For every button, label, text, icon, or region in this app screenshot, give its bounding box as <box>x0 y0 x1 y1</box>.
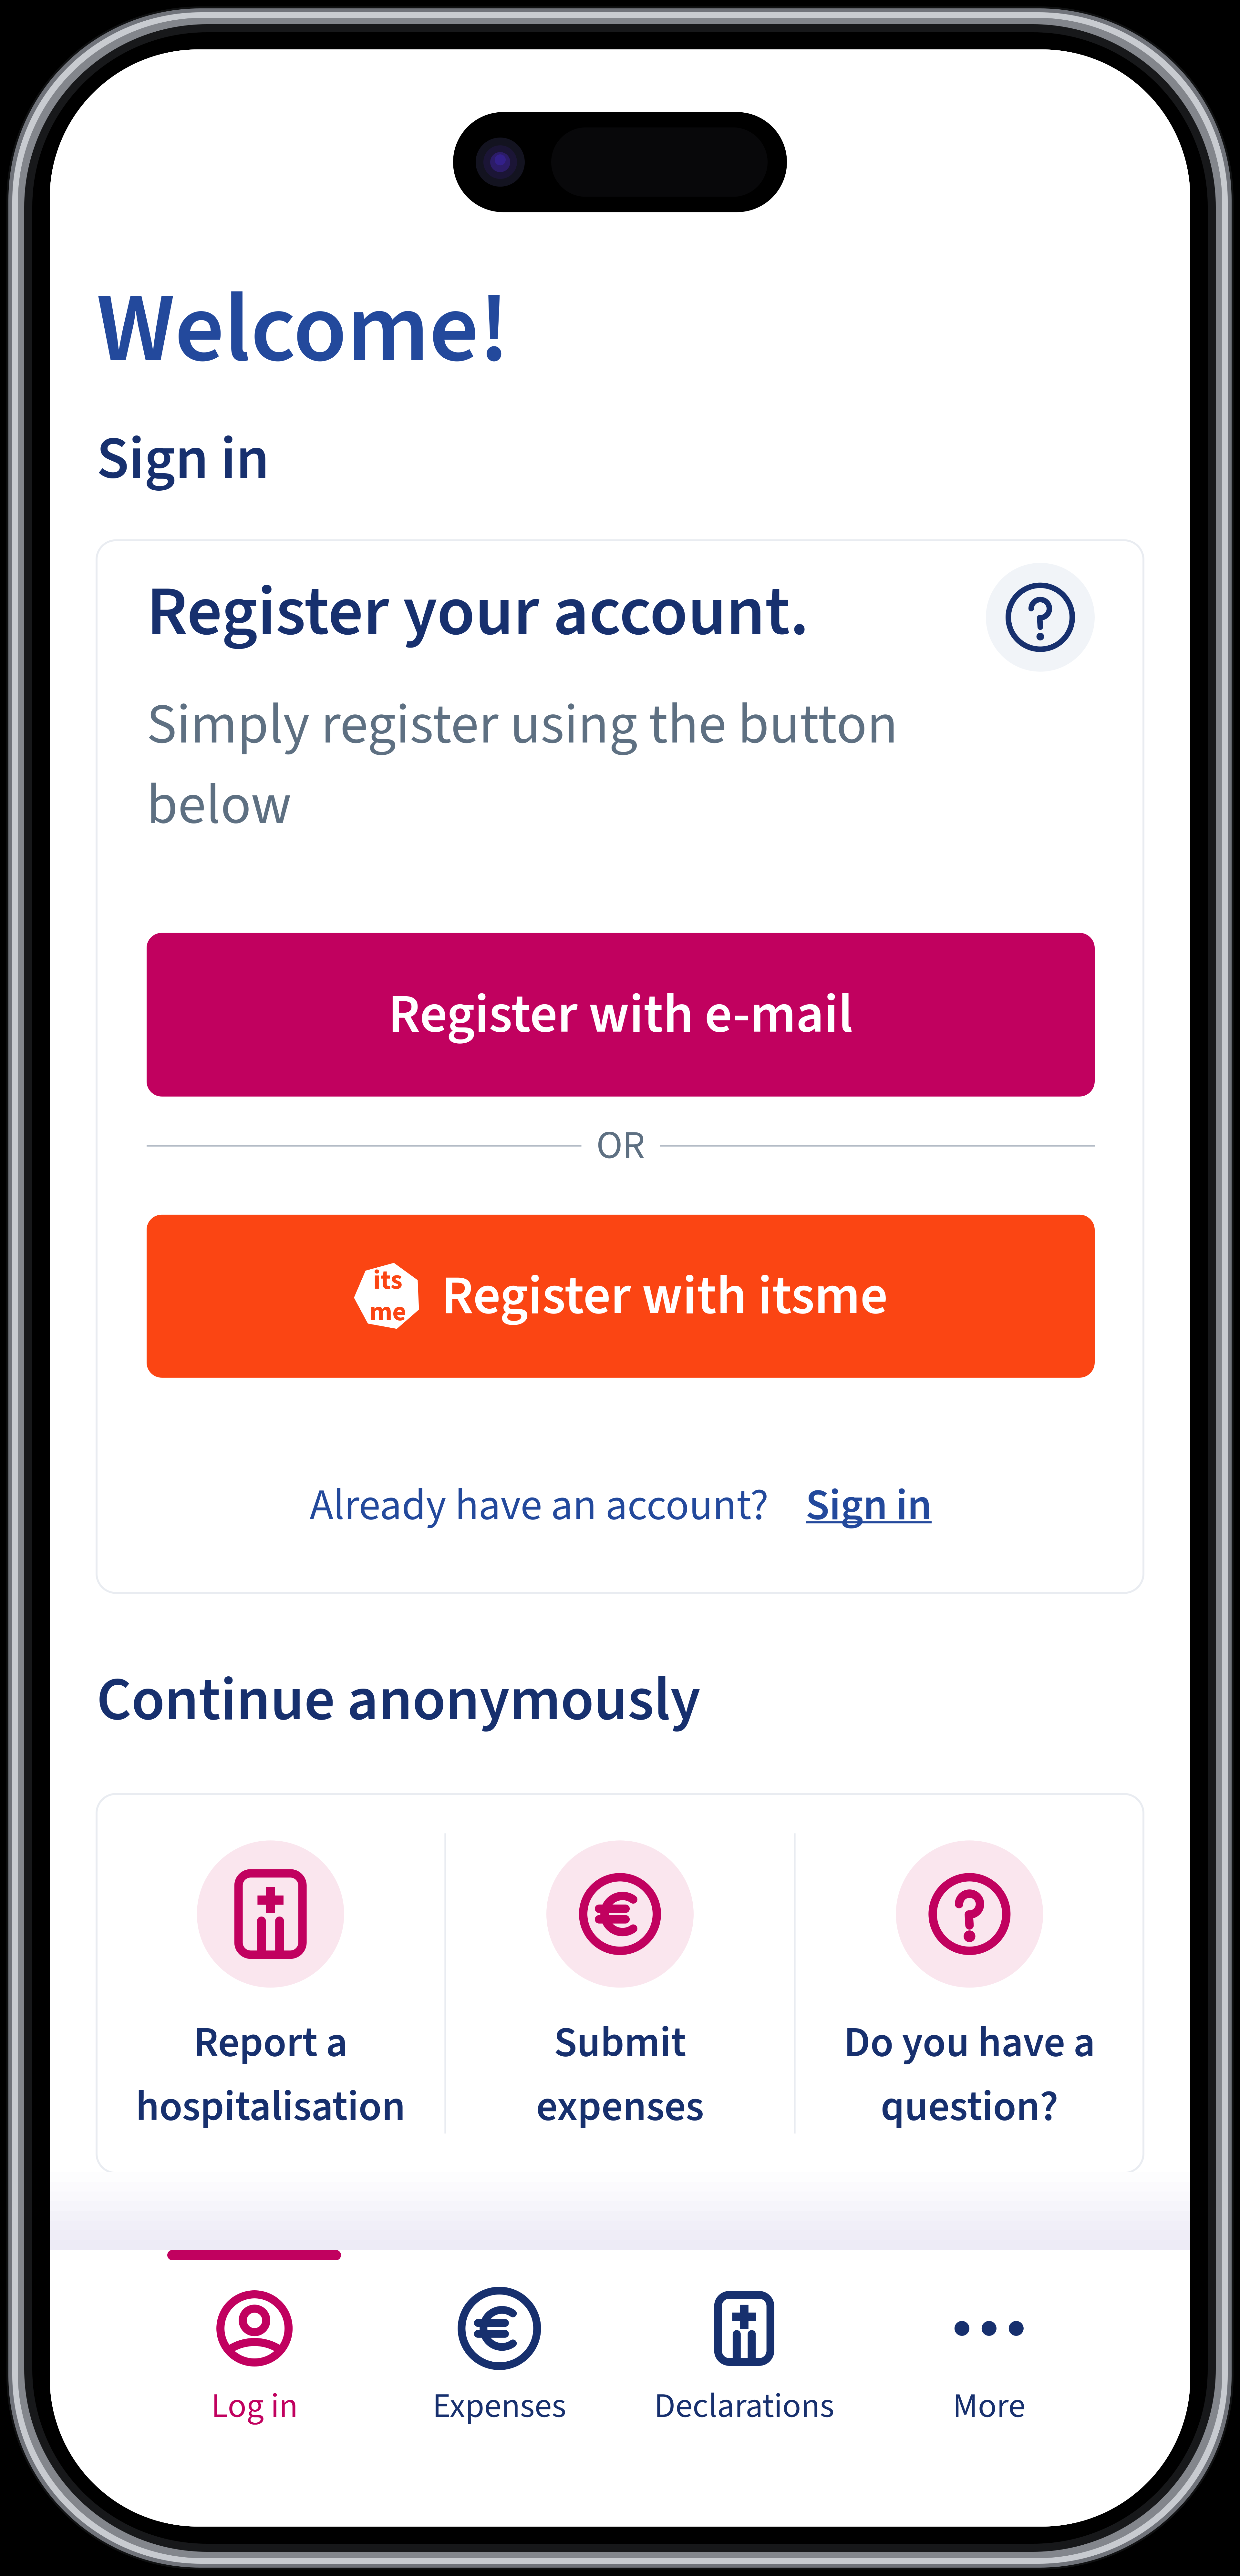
staticText: Sign in <box>97 417 269 502</box>
button[interactable]: its <box>147 1215 1095 1378</box>
button[interactable]: Submit <box>446 1794 794 2173</box>
staticText: Welcome! <box>97 260 509 399</box>
staticText: hospitalisation <box>136 2077 405 2137</box>
button[interactable]: Do you have a <box>796 1794 1143 2173</box>
staticText: Register with itsme <box>441 1258 888 1335</box>
button[interactable]: Report a <box>97 1794 444 2173</box>
staticText: Sign in <box>806 1475 932 1536</box>
button[interactable]: Declarations <box>622 2288 867 2449</box>
staticText: Declarations <box>654 2382 834 2431</box>
button[interactable]: Log in <box>132 2288 377 2449</box>
staticText: Submit <box>554 2013 686 2073</box>
button[interactable]: Expenses <box>377 2288 622 2449</box>
staticText: OR <box>596 1118 645 1174</box>
button[interactable]: Help <box>986 563 1095 672</box>
staticText: Log in <box>211 2382 298 2431</box>
staticText: Report a <box>193 2013 348 2073</box>
button[interactable]: Register with e-mail <box>147 933 1095 1097</box>
staticText: Do you have a <box>844 2013 1095 2073</box>
staticText: Simply register using the button below <box>147 685 898 845</box>
staticText: Continue anonymously <box>97 1657 700 1744</box>
staticText: More <box>953 2382 1025 2431</box>
staticText: Expenses <box>433 2382 566 2431</box>
staticText: Already have an account? <box>310 1475 769 1536</box>
staticText: Register with e-mail <box>388 976 853 1053</box>
button[interactable]: More <box>867 2288 1111 2449</box>
staticText: expenses <box>536 2077 704 2137</box>
staticText: question? <box>881 2077 1058 2137</box>
button[interactable]: Already have an account? <box>147 1475 1095 1536</box>
staticText: me <box>369 1293 406 1331</box>
staticText: its <box>373 1261 403 1299</box>
staticText: Register your account. <box>147 563 809 662</box>
